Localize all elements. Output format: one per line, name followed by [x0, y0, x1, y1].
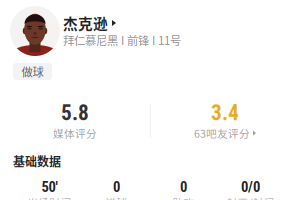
staticText: 射正/射门 — [226, 194, 274, 200]
staticText: 助攻 — [172, 194, 194, 200]
staticText: 3.4 — [211, 100, 239, 125]
staticText: 63吧友评分 — [194, 125, 250, 141]
staticText: 0/0 — [241, 178, 260, 196]
staticText: 做球 — [21, 63, 43, 80]
button[interactable]: 3.4 — [150, 103, 300, 139]
staticText: 5.8 — [61, 100, 89, 125]
button[interactable]: 做球 — [13, 63, 52, 80]
button[interactable]: 杰克逊 — [0, 0, 300, 56]
staticText: 媒体评分 — [53, 125, 97, 141]
staticText: 50' — [41, 178, 57, 196]
staticText: 进球 — [105, 194, 127, 200]
staticText: 拜仁慕尼黑 I 前锋 I 11号 — [63, 32, 181, 48]
staticText: 0 — [180, 178, 187, 196]
staticText: 杰克逊 — [63, 12, 108, 34]
staticText: 0 — [113, 178, 120, 196]
staticText: 基础数据 — [13, 152, 61, 170]
staticText: 出场时间 — [27, 194, 71, 200]
